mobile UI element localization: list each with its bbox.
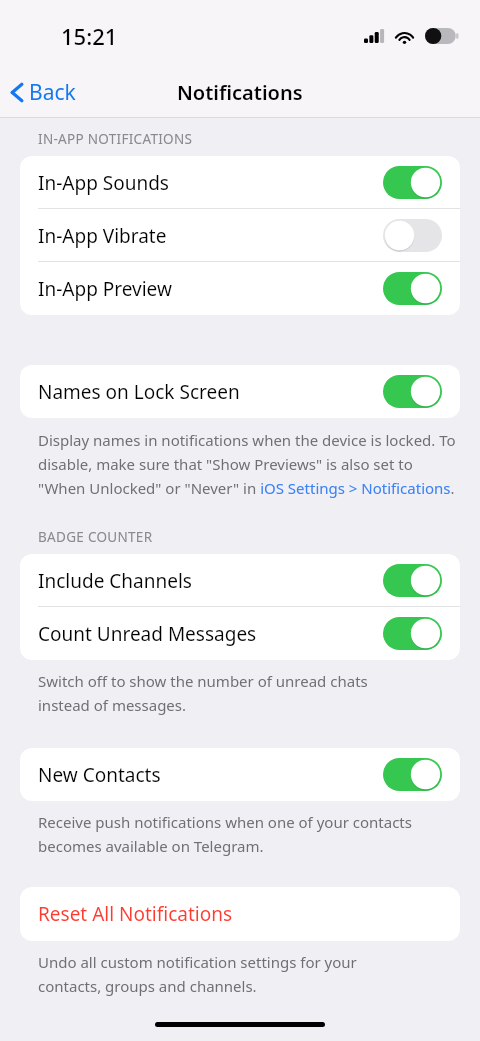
button[interactable]: Names on Lock Screen bbox=[20, 365, 460, 418]
staticText: Reset All Notifications bbox=[38, 901, 233, 927]
staticText: Include Channels bbox=[38, 568, 192, 594]
staticText: New Contacts bbox=[38, 762, 161, 788]
staticText: In-App Sounds bbox=[38, 170, 169, 196]
staticText: Receive push notifications when one of y… bbox=[38, 812, 412, 856]
other: Back bbox=[9, 81, 23, 104]
staticText: Count Unread Messages bbox=[38, 621, 257, 647]
button[interactable]: Count Unread Messages bbox=[20, 607, 460, 660]
button[interactable]: In-App Preview bbox=[20, 262, 460, 315]
button[interactable]: In-App Sounds bbox=[20, 156, 460, 209]
staticText: Notifications bbox=[177, 79, 303, 106]
staticText: BADGE COUNTER bbox=[38, 528, 153, 546]
staticText: Names on Lock Screen bbox=[38, 379, 240, 405]
button[interactable]: Back bbox=[0, 72, 88, 113]
button[interactable]: Reset All Notifications bbox=[20, 887, 460, 941]
staticText: IN-APP NOTIFICATIONS bbox=[38, 130, 193, 148]
staticText: In-App Preview bbox=[38, 276, 172, 302]
staticText: Undo all custom notification settings fo… bbox=[38, 952, 357, 996]
staticText: Display names in notifications when the … bbox=[38, 430, 458, 498]
button[interactable]: New Contacts bbox=[20, 748, 460, 801]
button[interactable]: Include Channels bbox=[20, 554, 460, 607]
staticText: Switch off to show the number of unread … bbox=[38, 671, 368, 715]
button[interactable]: In-App Vibrate bbox=[20, 209, 460, 262]
staticText: Back bbox=[29, 78, 76, 107]
staticText: In-App Vibrate bbox=[38, 223, 167, 249]
staticText: 15:21 bbox=[61, 21, 118, 51]
